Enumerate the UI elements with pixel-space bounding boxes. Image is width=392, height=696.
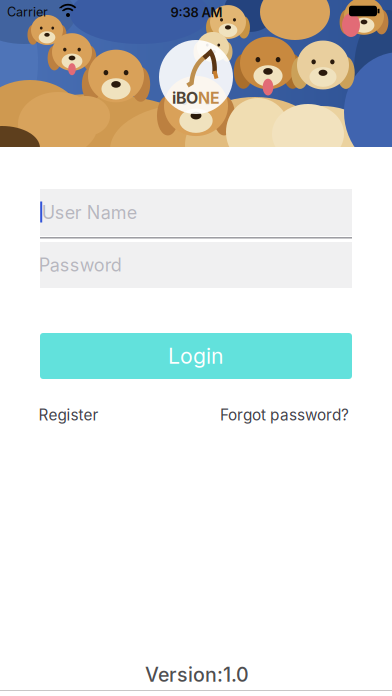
button[interactable]: Login	[40, 333, 352, 379]
staticText: NE	[198, 88, 220, 108]
button[interactable]: Password	[40, 242, 352, 288]
staticText: Version:1.0	[145, 663, 249, 686]
staticText: Register	[38, 406, 98, 424]
staticText: Password	[39, 254, 122, 276]
staticText: Carrier	[7, 4, 48, 20]
button[interactable]: Forgot password?	[220, 406, 349, 424]
button[interactable]: User Name	[40, 189, 352, 236]
staticText: Login	[168, 343, 224, 369]
staticText: iBO	[172, 88, 198, 108]
staticText: 9:38 AM	[170, 5, 222, 20]
button[interactable]: Register	[38, 406, 98, 424]
staticText: Forgot password?	[220, 406, 349, 424]
staticText: User Name	[42, 202, 137, 223]
